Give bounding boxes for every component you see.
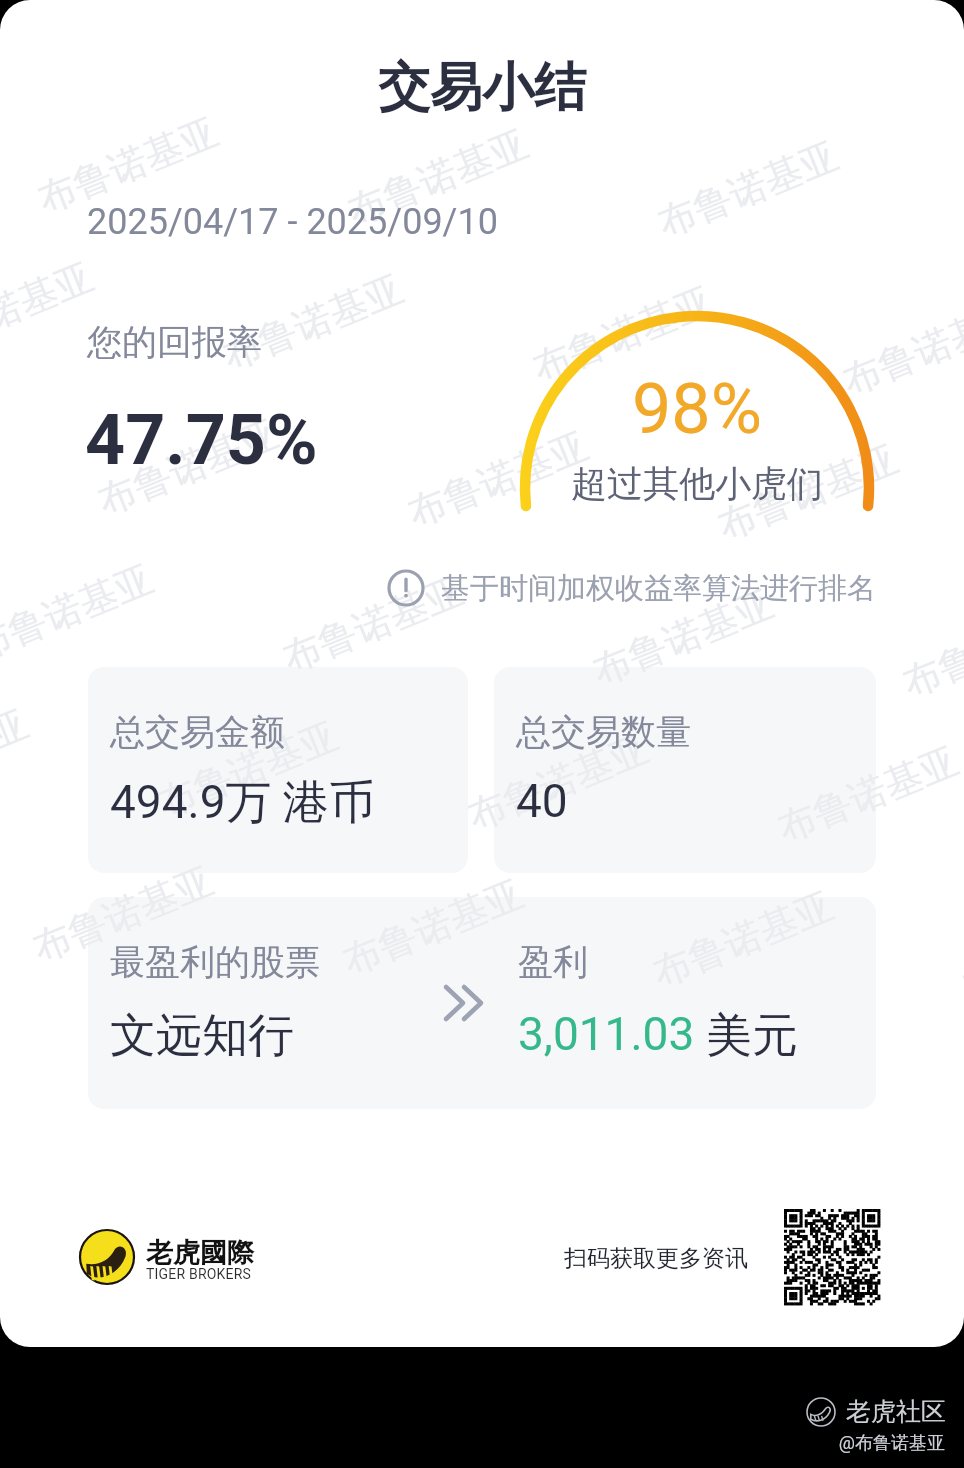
staticText: 您的回报率 <box>87 320 262 364</box>
staticText: 40 <box>516 774 568 828</box>
staticText: 2025/04/17 - 2025/09/10 <box>87 201 498 243</box>
staticText: 基于时间加权收益率算法进行排名 <box>441 570 876 607</box>
staticText: 布鲁诺基亚 <box>91 410 285 525</box>
staticText: 布鲁诺基亚 <box>586 580 780 695</box>
other: Details <box>442 983 486 1025</box>
button[interactable]: Tiger community <box>806 1396 946 1427</box>
staticText: 布鲁诺基亚 <box>651 132 845 247</box>
staticText: 布鲁诺基亚 <box>401 422 595 537</box>
staticText: 布鲁诺基亚 <box>711 435 905 550</box>
staticText: 文远知行 <box>110 1007 294 1065</box>
staticText: 老虎國際 <box>146 1236 254 1270</box>
staticText: 美元 <box>706 1007 798 1065</box>
staticText: 3,011.03 <box>518 1007 706 1061</box>
staticText: 老虎社区 <box>846 1396 946 1427</box>
staticText: 布鲁诺基亚 <box>216 265 410 380</box>
staticText: 布鲁诺基亚 <box>0 555 160 670</box>
staticText: 布鲁诺基亚 <box>771 737 964 852</box>
staticText: 布鲁诺基亚 <box>896 592 964 707</box>
staticText: 总交易数量 <box>516 710 691 754</box>
staticText: 布鲁诺基亚 <box>0 253 100 368</box>
staticText: 47.75% <box>85 399 318 481</box>
button[interactable]: 总交易金额 <box>88 667 468 873</box>
staticText: 布鲁诺基亚 <box>276 567 470 682</box>
staticText: 布鲁诺基亚 <box>31 108 225 223</box>
button[interactable]: 最盈利的股票 文远知行 <box>88 897 876 1109</box>
staticText: 布鲁诺基亚 <box>26 857 220 972</box>
staticText: 最盈利的股票 <box>110 940 320 984</box>
other: Info <box>387 569 425 607</box>
button[interactable]: 总交易数量 <box>494 667 876 873</box>
staticText: 布鲁诺基亚 <box>836 290 964 405</box>
staticText: 盈利 <box>518 940 588 984</box>
button[interactable]: QR code <box>784 1209 880 1305</box>
staticText: 总交易金额 <box>110 710 285 754</box>
staticText: 布鲁诺基亚 <box>461 725 655 840</box>
staticText: 布鲁诺基亚 <box>151 712 345 827</box>
staticText: TIGER BROKERS <box>146 1266 252 1282</box>
staticText: 494.9万 港币 <box>110 774 375 832</box>
staticText: 布鲁诺基亚 <box>0 700 35 815</box>
button[interactable]: Tiger Brokers <box>79 1226 259 1288</box>
staticText: 布鲁诺基亚 <box>336 870 530 985</box>
staticText: 交易小结 <box>0 55 964 121</box>
staticText: 布鲁诺基亚 <box>526 277 720 392</box>
other: Tiger community <box>806 1397 836 1427</box>
other: Tiger Brokers <box>79 1229 135 1285</box>
staticText: 布鲁诺基亚 <box>341 120 535 235</box>
staticText: 超过其他小虎们 <box>515 461 879 506</box>
staticText: 布鲁诺基亚 <box>646 882 840 997</box>
staticText: 扫码获取更多资讯 <box>564 1244 748 1273</box>
staticText: @布鲁诺基亚 <box>0 1432 945 1455</box>
staticText: 98% <box>515 368 879 450</box>
